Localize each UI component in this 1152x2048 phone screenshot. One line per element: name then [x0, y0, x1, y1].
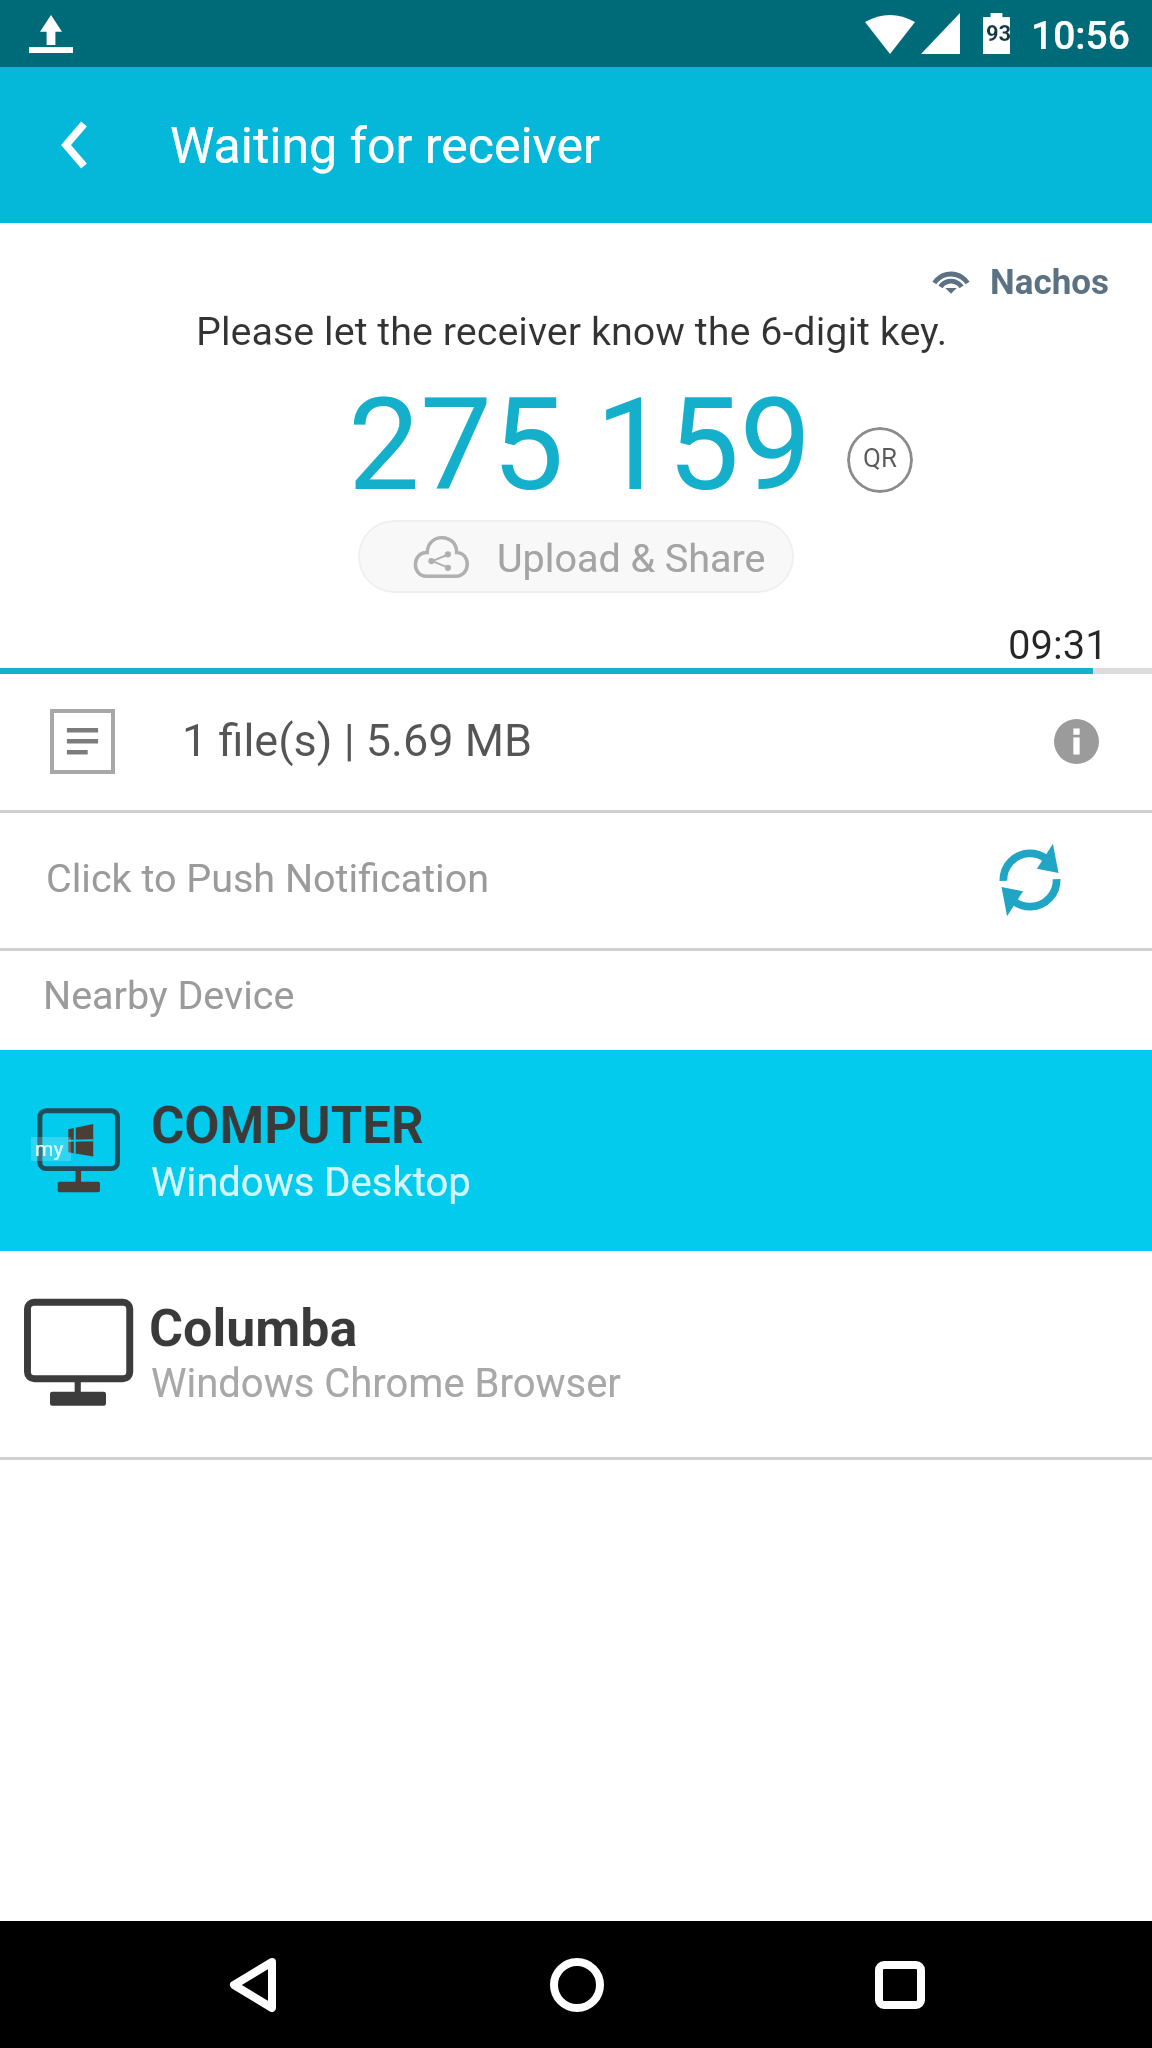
button[interactable]: Refresh: [978, 828, 1082, 932]
staticText: Columba: [149, 1298, 358, 1359]
button[interactable]: Upload & Share: [358, 520, 794, 593]
staticText: Waiting for receiver: [170, 117, 600, 176]
staticText: Windows Chrome Browser: [151, 1360, 621, 1407]
staticText: Windows Desktop: [151, 1159, 471, 1206]
staticText: 93: [986, 21, 1012, 47]
staticText: 10:56: [1031, 13, 1130, 59]
staticText: 1 file(s) | 5.69 MB: [182, 714, 533, 767]
button[interactable]: File information: [1030, 695, 1122, 787]
button[interactable]: Navigate up: [19, 89, 131, 201]
button[interactable]: Recent apps: [836, 1921, 964, 2048]
staticText: 275 159: [348, 370, 812, 520]
button[interactable]: [0, 813, 1152, 948]
button[interactable]: [0, 674, 1152, 810]
staticText: Upload & Share: [497, 535, 766, 581]
button[interactable]: [0, 951, 1152, 1050]
button[interactable]: [0, 1050, 1152, 1251]
button[interactable]: QR: [847, 427, 913, 493]
staticText: Nearby Device: [43, 972, 295, 1018]
staticText: QR: [863, 443, 897, 473]
button[interactable]: [0, 1251, 1152, 1457]
staticText: Please let the receiver know the 6-digit…: [196, 308, 948, 354]
button[interactable]: Nachos: [928, 259, 1109, 300]
staticText: COMPUTER: [151, 1096, 424, 1156]
staticText: my: [35, 1137, 64, 1162]
staticText: Click to Push Notification: [46, 855, 490, 901]
button[interactable]: Home: [513, 1921, 641, 2048]
staticText: Nachos: [990, 262, 1109, 303]
staticText: 09:31: [1008, 622, 1108, 669]
button[interactable]: Back: [189, 1921, 317, 2048]
